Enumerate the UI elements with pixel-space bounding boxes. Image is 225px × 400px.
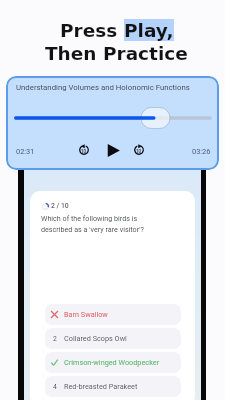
- staticText: Red-breasted Parakeet: [64, 382, 138, 391]
- staticText: Crimson-winged Woodpecker: [64, 358, 160, 367]
- staticText: 2 / 10: [51, 202, 69, 210]
- staticText: Press: [60, 20, 124, 42]
- button[interactable]: 2: [45, 328, 181, 349]
- staticText: 10: [136, 149, 142, 154]
- staticText: Then Practice: [45, 43, 188, 65]
- button[interactable]: Replay 10 seconds: [72, 138, 96, 162]
- staticText: 10: [81, 149, 87, 154]
- staticText: Which of the following birds is describe…: [41, 214, 151, 234]
- staticText: 4: [53, 383, 57, 390]
- staticText: 2: [53, 335, 57, 342]
- button[interactable]: Forward 10 seconds: [127, 138, 151, 162]
- button[interactable]: Crimson-winged Woodpecker: [45, 352, 181, 373]
- button[interactable]: 4: [45, 376, 181, 397]
- staticText: Understanding Volumes and Holonomic Func…: [16, 83, 190, 92]
- staticText: 03:26: [192, 147, 211, 156]
- staticText: Play,: [124, 20, 174, 42]
- button[interactable]: Play: [101, 138, 125, 162]
- button[interactable]: Barn Swallow: [45, 304, 181, 325]
- staticText: Barn Swallow: [64, 310, 108, 319]
- staticText: Collared Scops Owl: [64, 334, 127, 343]
- staticText: 02:31: [16, 147, 35, 156]
